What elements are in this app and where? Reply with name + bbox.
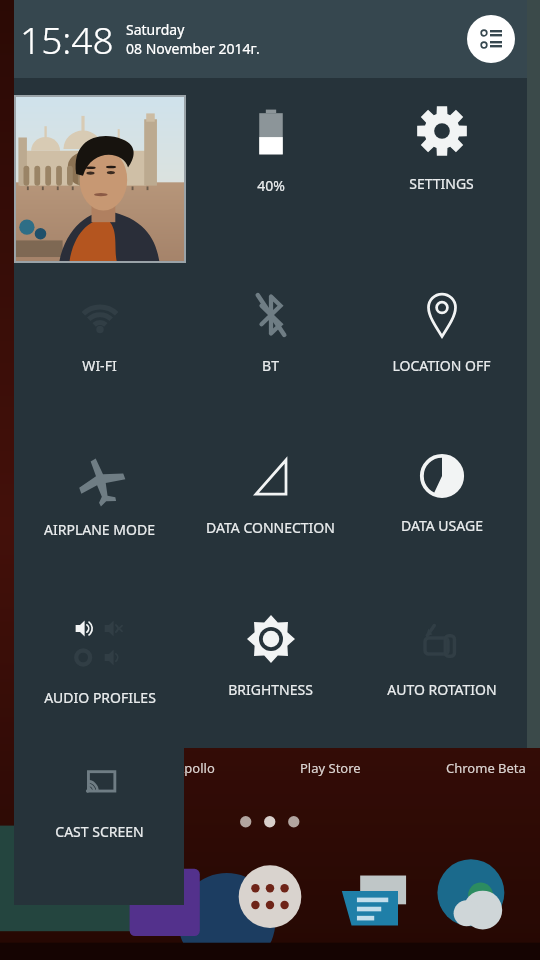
- button[interactable]: User photo: [15, 96, 185, 262]
- button[interactable]: AUTO ROTATION: [356, 588, 527, 748]
- staticText: DATA CONNECTION: [206, 518, 335, 537]
- staticText: BT: [262, 356, 279, 375]
- staticText: Play Store: [300, 759, 361, 777]
- staticText: 15:48: [20, 14, 114, 64]
- staticText: 08 November 2014г.: [126, 39, 260, 58]
- button[interactable]: AIRPLANE MODE: [14, 426, 185, 588]
- staticText: AUDIO PROFILES: [44, 688, 156, 707]
- staticText: LOCATION OFF: [392, 356, 491, 375]
- staticText: AUTO ROTATION: [387, 680, 497, 699]
- button[interactable]: 40%: [185, 78, 356, 264]
- button[interactable]: BT: [185, 264, 356, 426]
- staticText: SETTINGS: [409, 174, 474, 193]
- staticText: BRIGHTNESS: [228, 680, 313, 699]
- button[interactable]: WI-FI: [14, 264, 185, 426]
- button[interactable]: SETTINGS: [356, 78, 527, 264]
- button[interactable]: DATA CONNECTION: [185, 426, 356, 588]
- staticText: Saturday: [126, 20, 185, 39]
- staticText: Apollo: [176, 759, 215, 777]
- button[interactable]: BRIGHTNESS: [185, 588, 356, 748]
- staticText: WI-FI: [82, 356, 117, 375]
- button[interactable]: LOCATION OFF: [356, 264, 527, 426]
- button[interactable]: Notifications list: [467, 15, 515, 63]
- button[interactable]: DATA USAGE: [356, 426, 527, 588]
- staticText: AIRPLANE MODE: [44, 520, 155, 539]
- button[interactable]: AUDIO PROFILES: [14, 588, 185, 748]
- staticText: 40%: [257, 176, 285, 195]
- staticText: Chrome Beta: [446, 759, 526, 777]
- staticText: DATA USAGE: [401, 516, 483, 535]
- button[interactable]: CAST SCREEN: [14, 748, 184, 905]
- staticText: CAST SCREEN: [55, 822, 144, 841]
